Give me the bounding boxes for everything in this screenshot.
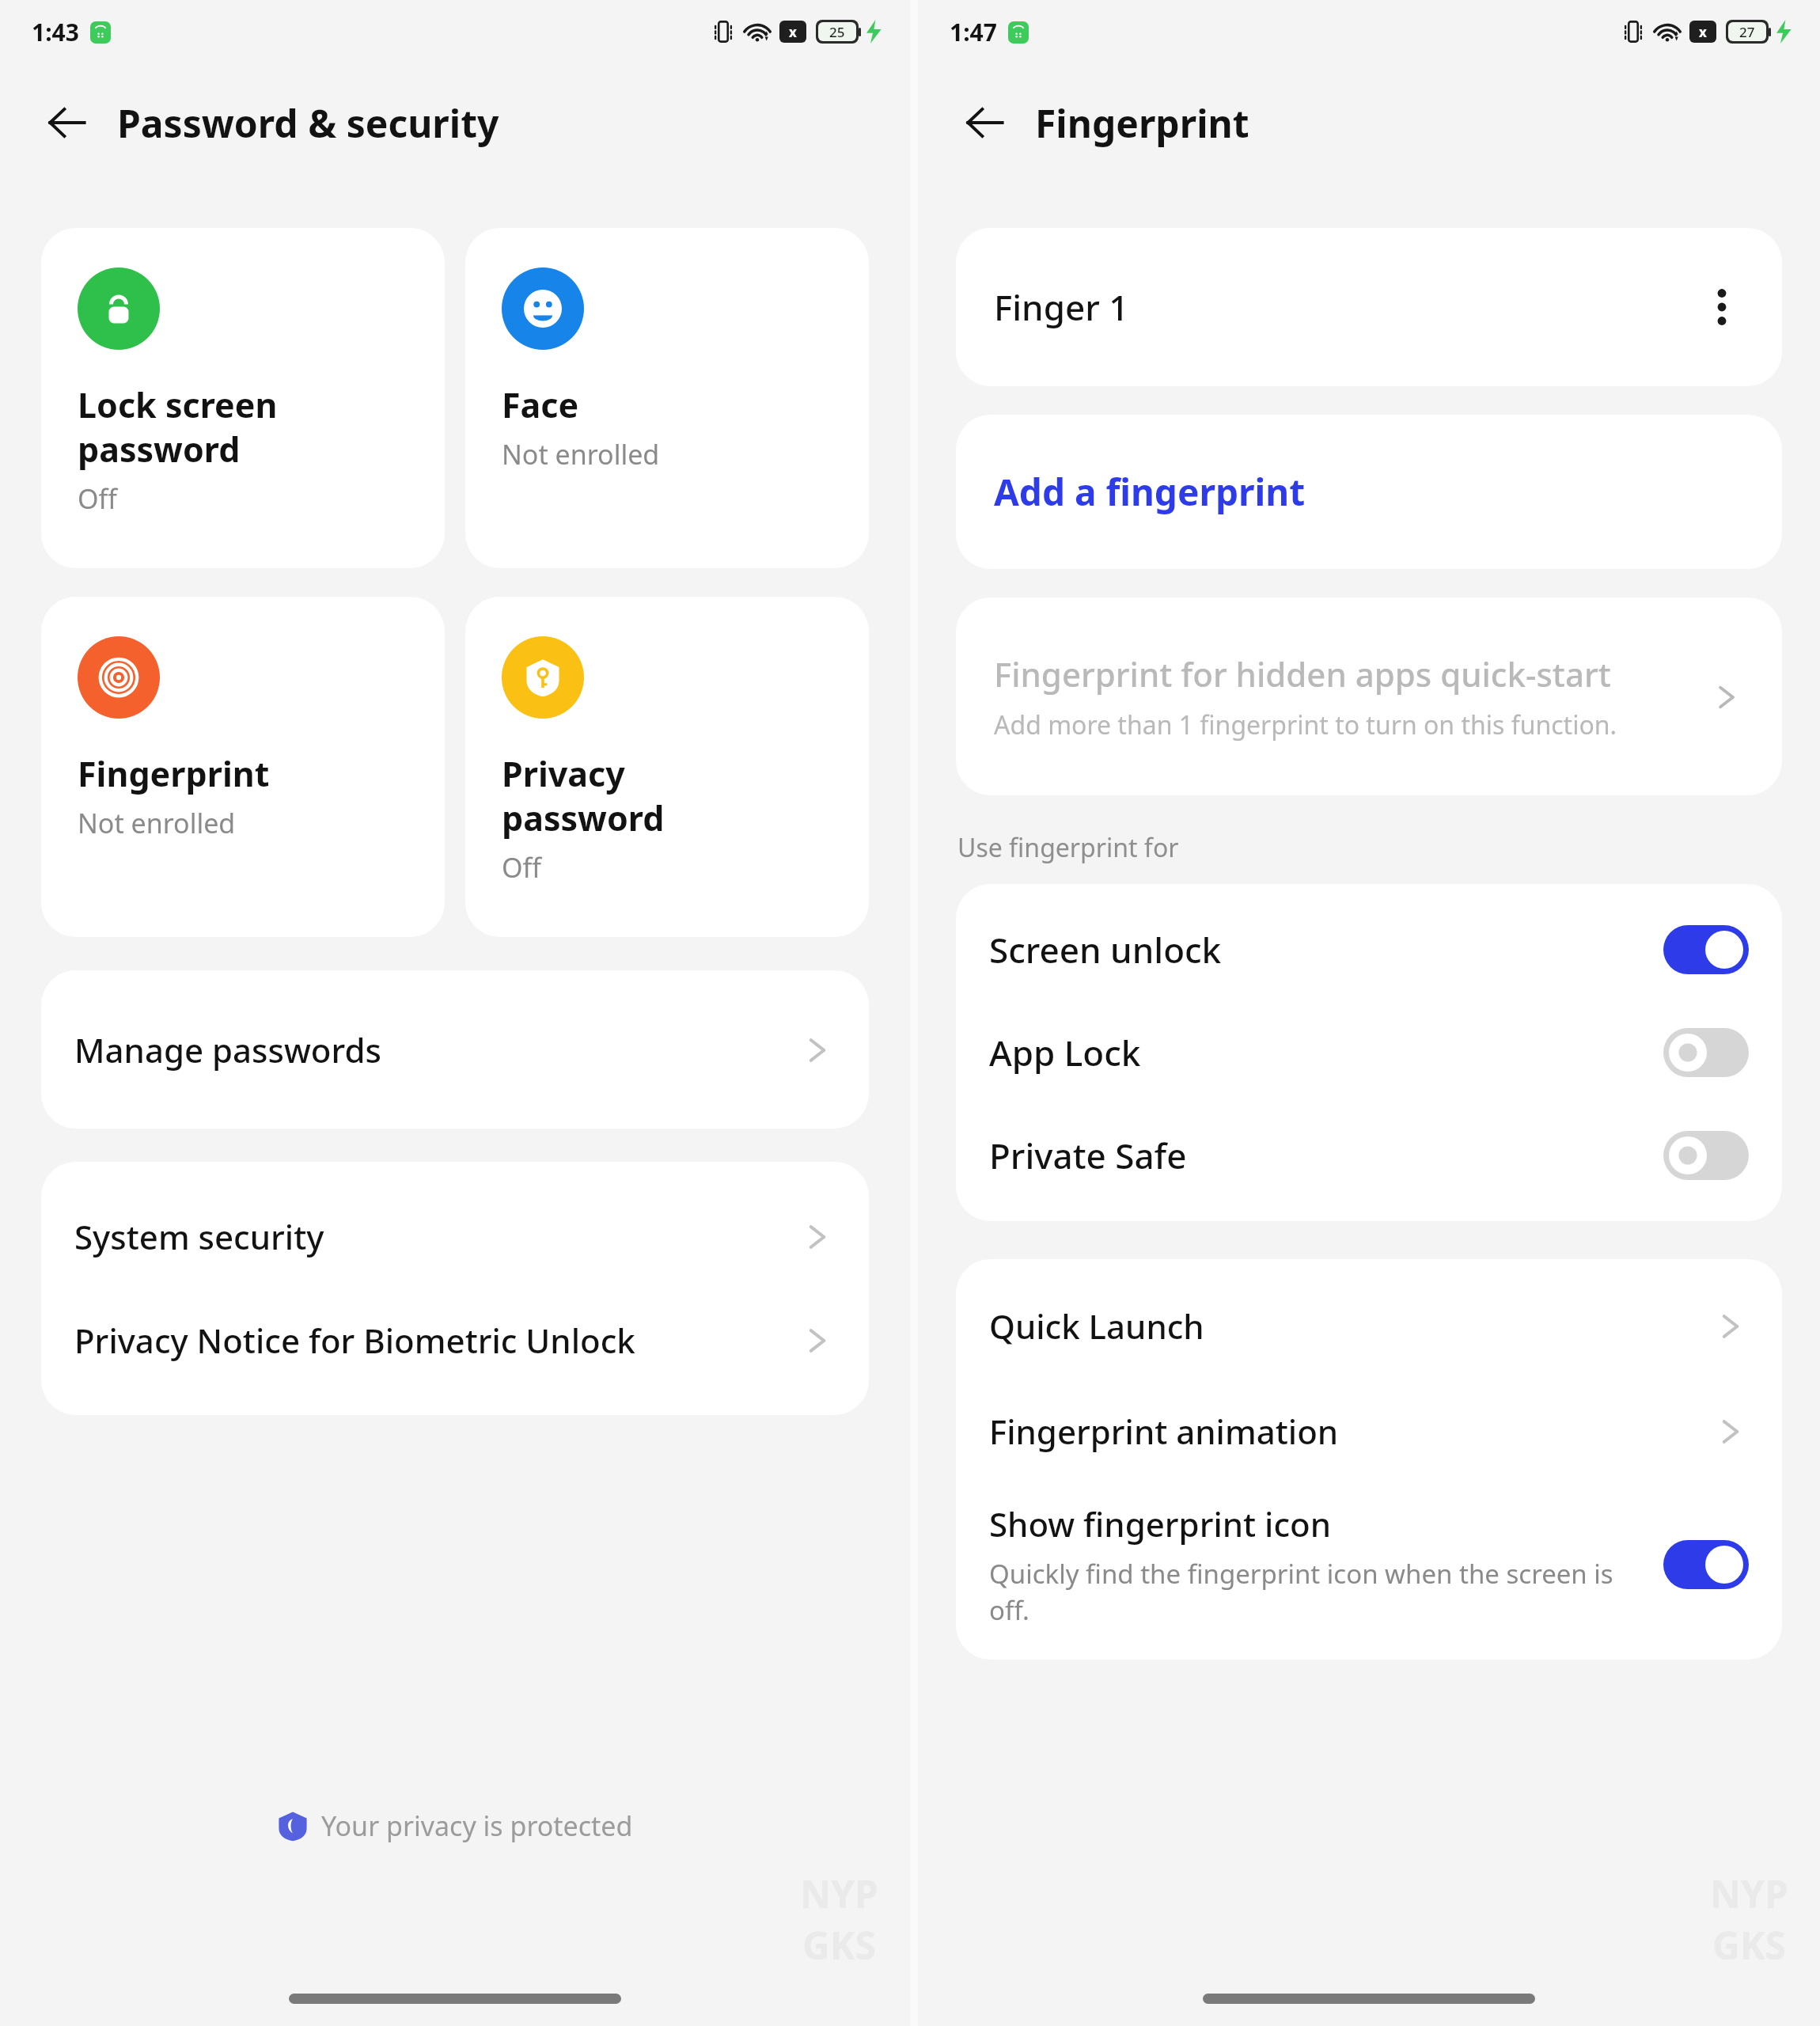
button[interactable]: On: [1663, 925, 1749, 974]
staticText: Fingerprint for hidden apps quick-start: [994, 651, 1611, 696]
button[interactable]: Privacy password: [465, 597, 869, 937]
staticText: Manage passwords: [74, 1027, 799, 1072]
staticText: 27: [1739, 23, 1755, 41]
button[interactable]: More options: [1700, 285, 1744, 329]
button[interactable]: Finger 1: [956, 228, 1782, 386]
button[interactable]: On: [1663, 1540, 1749, 1589]
staticText: Your privacy is protected: [321, 1808, 633, 1844]
staticText: 25: [829, 23, 845, 41]
staticText: Finger 1: [994, 283, 1700, 331]
staticText: 1:47: [950, 16, 997, 48]
button[interactable]: Screen unlock: [956, 898, 1782, 1001]
staticText: Off: [78, 480, 117, 517]
button[interactable]: Lock screen password: [41, 228, 445, 568]
button[interactable]: Face: [465, 228, 869, 568]
button[interactable]: Fingerprint: [41, 597, 445, 937]
staticText: Not enrolled: [502, 436, 660, 472]
staticText: App Lock: [989, 1029, 1663, 1076]
staticText: Fingerprint: [78, 750, 270, 797]
button[interactable]: Off: [1663, 1131, 1749, 1180]
button[interactable]: Back: [38, 93, 97, 152]
staticText: Private Safe: [989, 1132, 1663, 1179]
button[interactable]: Private Safe: [956, 1104, 1782, 1207]
staticText: 1:43: [32, 16, 79, 48]
staticText: Add a fingerprint: [994, 467, 1306, 517]
button[interactable]: Privacy Notice for Biometric Unlock: [41, 1297, 869, 1383]
button[interactable]: Manage passwords: [41, 1007, 869, 1093]
staticText: Show fingerprint icon: [989, 1501, 1332, 1546]
staticText: NYP: [1710, 1868, 1788, 1919]
staticText: Not enrolled: [78, 805, 236, 841]
staticText: Screen unlock: [989, 926, 1663, 973]
staticText: GKS: [1712, 1919, 1787, 1971]
staticText: x: [1699, 23, 1707, 41]
staticText: Fingerprint: [1035, 97, 1249, 149]
button[interactable]: Quick Launch: [956, 1283, 1782, 1369]
staticText: Off: [502, 849, 541, 886]
staticText: Use fingerprint for: [957, 830, 1179, 865]
staticText: Fingerprint animation: [989, 1409, 1712, 1454]
staticText: Quickly find the fingerprint icon when t…: [989, 1556, 1647, 1628]
staticText: Quick Launch: [989, 1303, 1712, 1349]
staticText: System security: [74, 1214, 799, 1259]
staticText: Privacy password: [502, 750, 665, 841]
staticText: NYP: [800, 1868, 878, 1919]
staticText: Privacy Notice for Biometric Unlock: [74, 1318, 799, 1363]
staticText: x: [789, 23, 797, 41]
staticText: Add more than 1 fingerprint to turn on t…: [994, 708, 1617, 742]
button[interactable]: Fingerprint for hidden apps quick-start: [956, 598, 1782, 795]
button[interactable]: Fingerprint animation: [956, 1388, 1782, 1474]
staticText: GKS: [802, 1919, 877, 1971]
button[interactable]: Back: [956, 93, 1014, 152]
staticText: Face: [502, 381, 579, 428]
button[interactable]: Show fingerprint icon: [956, 1489, 1782, 1641]
button[interactable]: Off: [1663, 1028, 1749, 1077]
staticText: Password & security: [117, 97, 499, 149]
staticText: Lock screen password: [78, 381, 278, 472]
button[interactable]: App Lock: [956, 1001, 1782, 1104]
button[interactable]: Add a fingerprint: [956, 415, 1782, 569]
button[interactable]: System security: [41, 1193, 869, 1280]
